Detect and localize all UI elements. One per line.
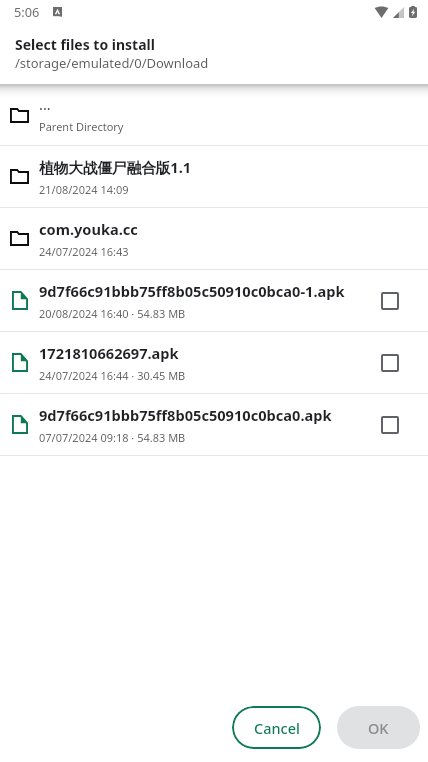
staticText: 21/08/2024 14:09 [39, 182, 129, 197]
staticText: Parent Directory [39, 119, 124, 134]
button[interactable]: Select 1721810662697.apk [370, 343, 410, 383]
staticText: OK [368, 718, 389, 738]
staticText: 24/07/2024 16:44 · 30.45 MB [39, 368, 186, 383]
button[interactable]: com.youka.cc [0, 208, 428, 269]
staticText: 1721810662697.apk [39, 343, 179, 363]
staticText: ... [39, 94, 51, 114]
staticText: com.youka.cc [39, 219, 138, 239]
staticText: 9d7f66c91bbb75ff8b05c50910c0bca0.apk [39, 405, 332, 425]
staticText: 植物大战僵尸融合版1.1 [39, 157, 192, 177]
staticText: Select files to install [15, 35, 155, 54]
button[interactable]: Cancel [232, 706, 321, 749]
button[interactable]: 植物大战僵尸融合版1.1 [0, 146, 428, 207]
button[interactable]: 1721810662697.apk [0, 332, 428, 393]
button[interactable]: 9d7f66c91bbb75ff8b05c50910c0bca0.apk [0, 394, 428, 455]
staticText: 5:06 [14, 3, 40, 20]
button[interactable]: 9d7f66c91bbb75ff8b05c50910c0bca0-1.apk [0, 270, 428, 331]
staticText: 20/08/2024 16:40 · 54.83 MB [39, 306, 186, 321]
button[interactable]: Select 9d7f66c91bbb75ff8b05c50910c0bca0.… [370, 405, 410, 445]
button[interactable]: Select 9d7f66c91bbb75ff8b05c50910c0bca0-… [370, 281, 410, 321]
button[interactable]: ... [0, 86, 428, 145]
button[interactable]: OK [337, 706, 420, 749]
staticText: 9d7f66c91bbb75ff8b05c50910c0bca0-1.apk [39, 281, 345, 301]
staticText: /storage/emulated/0/Download [15, 54, 209, 72]
staticText: 07/07/2024 09:18 · 54.83 MB [39, 430, 186, 445]
staticText: Cancel [254, 718, 300, 738]
staticText: 24/07/2024 16:43 [39, 244, 129, 259]
